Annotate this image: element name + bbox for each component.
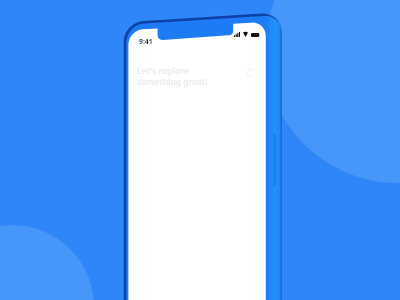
staticText: 9:41 [139, 37, 153, 46]
button[interactable]: Notifications [246, 67, 255, 76]
staticText: Let's explore something great! [137, 65, 208, 88]
